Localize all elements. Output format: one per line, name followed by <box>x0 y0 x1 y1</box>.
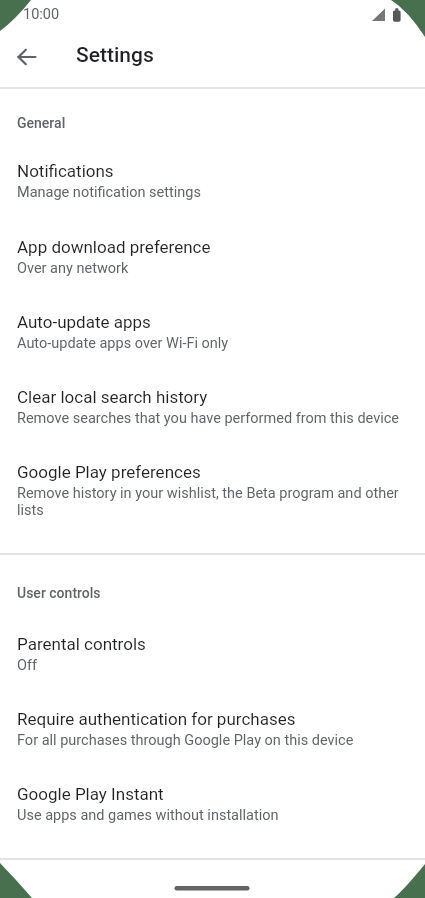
button[interactable]: Require authentication for purchases <box>0 693 425 768</box>
button[interactable]: Clear local search history <box>0 371 425 446</box>
staticText: Parental controls <box>17 634 146 654</box>
staticText: Settings <box>76 43 154 68</box>
staticText: Notifications <box>17 161 114 181</box>
staticText: Google Play preferences <box>17 462 201 482</box>
staticText: 10:00 <box>23 6 60 23</box>
button[interactable]: Google Play preferences <box>0 446 425 521</box>
staticText: Google Play Instant <box>17 784 164 804</box>
staticText: Auto-update apps over Wi-Fi only <box>17 335 229 352</box>
button[interactable]: Auto-update apps <box>0 296 425 371</box>
staticText: Remove history in your wishlist, the Bet… <box>17 485 411 519</box>
button[interactable]: Notifications <box>0 145 425 220</box>
staticText: User controls <box>17 585 101 601</box>
staticText: Require authentication for purchases <box>17 709 296 729</box>
button[interactable]: Parental controls <box>0 618 425 693</box>
staticText: For all purchases through Google Play on… <box>17 732 354 749</box>
staticText: Off <box>17 657 38 674</box>
button[interactable] <box>5 35 49 79</box>
button[interactable]: Google Play Instant <box>0 768 425 843</box>
button[interactable]: App download preference <box>0 221 425 296</box>
staticText: Remove searches that you have performed … <box>17 410 400 427</box>
staticText: App download preference <box>17 237 211 257</box>
staticText: Auto-update apps <box>17 312 151 332</box>
staticText: General <box>17 115 66 131</box>
staticText: Clear local search history <box>17 387 208 407</box>
staticText: Over any network <box>17 260 129 277</box>
staticText: Manage notification settings <box>17 184 201 201</box>
staticText: Use apps and games without installation <box>17 807 279 824</box>
